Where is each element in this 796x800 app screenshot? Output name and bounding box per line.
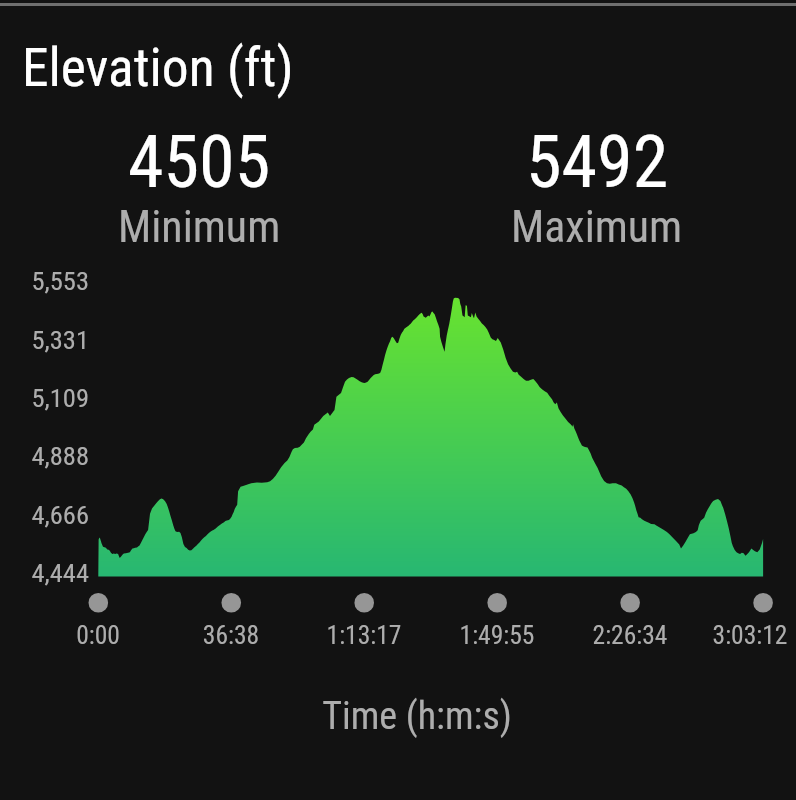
- staticText: 2:26:34: [550, 620, 710, 650]
- staticText: 1:13:17: [284, 620, 444, 650]
- staticText: 5492: [526, 120, 669, 204]
- button[interactable]: Elevation (ft): [22, 36, 294, 99]
- staticText: 4,444: [0, 557, 89, 588]
- staticText: 4505: [128, 120, 271, 204]
- button[interactable]: 5492: [398, 120, 796, 256]
- staticText: Elevation (ft): [22, 36, 294, 99]
- staticText: 0:00: [18, 620, 178, 650]
- staticText: 5,109: [0, 382, 89, 413]
- staticText: 5,331: [0, 324, 89, 355]
- other: Elevation profile chart: [0, 0, 796, 800]
- staticText: 4,888: [0, 440, 89, 471]
- staticText: 5,553: [0, 265, 89, 296]
- staticText: Minimum: [118, 201, 281, 253]
- staticText: 36:38: [151, 620, 311, 650]
- staticText: Time (h:m:s): [217, 694, 617, 739]
- staticText: 1:49:55: [417, 620, 577, 650]
- staticText: Maximum: [511, 201, 683, 253]
- staticText: 3:03:12: [670, 620, 796, 650]
- button[interactable]: 4505: [0, 120, 398, 256]
- staticText: 4,666: [0, 499, 89, 530]
